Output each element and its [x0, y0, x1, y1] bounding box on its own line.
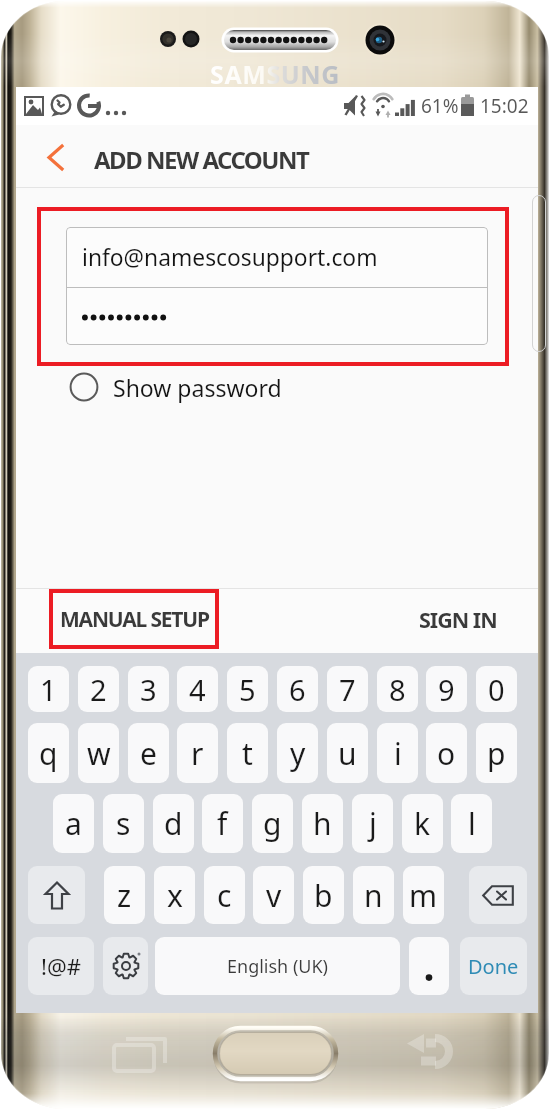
staticText: 61% [421, 93, 459, 119]
staticText: 2 [90, 670, 107, 709]
button[interactable]: d [153, 794, 194, 853]
button[interactable]: z [104, 866, 145, 924]
staticText: j [369, 803, 377, 844]
button[interactable]: i [377, 723, 418, 783]
button[interactable]: a [53, 794, 94, 853]
button[interactable]: Done [460, 937, 527, 995]
button[interactable]: k [402, 794, 443, 853]
staticText: 3 [140, 670, 157, 709]
staticText: 15:02 [480, 93, 529, 119]
staticText: 9 [438, 670, 455, 709]
staticText: s [116, 803, 131, 844]
staticText: t [242, 733, 253, 774]
button[interactable]: s [103, 794, 144, 853]
button[interactable]: l [451, 794, 492, 853]
staticText: 5 [239, 670, 256, 709]
staticText: 0 [488, 670, 505, 709]
button[interactable]: !@# [28, 937, 94, 995]
staticText: q [39, 733, 58, 774]
button[interactable]: Keyboard settings [103, 937, 148, 995]
button[interactable]: x [154, 866, 195, 924]
button[interactable]: y [277, 723, 318, 783]
button[interactable]: f [202, 794, 243, 853]
button[interactable]: b [303, 866, 344, 924]
button[interactable]: 2 [78, 666, 119, 712]
staticText: i [394, 733, 402, 774]
button[interactable]: t [227, 723, 268, 783]
staticText: 4 [189, 670, 206, 709]
staticText: !@# [41, 951, 81, 981]
button[interactable]: 6 [277, 666, 318, 712]
button[interactable]: English (UK) [155, 937, 400, 995]
staticText: f [217, 803, 228, 844]
staticText: h [313, 803, 332, 844]
staticText: e [140, 733, 157, 774]
button[interactable]: Back [34, 136, 78, 180]
button[interactable]: Show password [68, 370, 318, 404]
staticText: English (UK) [227, 954, 329, 979]
staticText: SAMSUNG [210, 57, 340, 85]
button[interactable]: p [476, 723, 517, 783]
button[interactable]: 3 [128, 666, 169, 712]
staticText: ADD NEW ACCOUNT [94, 143, 309, 176]
staticText: Show password [113, 372, 282, 403]
staticText: k [414, 803, 431, 844]
button[interactable]: h [302, 794, 343, 853]
staticText: 7 [339, 670, 356, 709]
staticText: b [314, 875, 333, 916]
staticText: m [409, 875, 438, 916]
button[interactable]: c [204, 866, 245, 924]
staticText: MANUAL SETUP [60, 605, 209, 634]
button[interactable]: MANUAL SETUP [49, 589, 219, 649]
button[interactable]: Backspace [469, 866, 527, 924]
staticText: 1 [40, 670, 57, 709]
staticText: info@namescosupport.com [82, 242, 378, 273]
staticText: Done [468, 953, 519, 980]
button[interactable]: j [352, 794, 393, 853]
button[interactable]: v [253, 866, 294, 924]
button[interactable]: 7 [327, 666, 368, 712]
staticText: x [167, 875, 183, 916]
staticText: SIGN IN [419, 605, 497, 634]
staticText: d [164, 803, 183, 844]
button[interactable]: u [327, 723, 368, 783]
staticText: 8 [389, 670, 406, 709]
button[interactable]: m [403, 866, 444, 924]
button[interactable]: Period [409, 937, 449, 995]
staticText: 6 [289, 670, 306, 709]
button[interactable]: 8 [377, 666, 418, 712]
staticText: o [437, 733, 456, 774]
button[interactable]: SIGN IN [412, 589, 504, 649]
button[interactable]: 1 [28, 666, 69, 712]
staticText: u [338, 733, 357, 774]
staticText: g [263, 803, 282, 844]
staticText: w [87, 733, 111, 774]
button[interactable]: r [177, 723, 218, 783]
staticText: r [191, 733, 204, 774]
staticText: n [364, 875, 383, 916]
staticText: y [290, 733, 306, 774]
staticText: z [117, 875, 132, 916]
button[interactable]: Shift [28, 866, 85, 924]
button[interactable]: 9 [426, 666, 467, 712]
button[interactable]: e [128, 723, 169, 783]
button[interactable]: 4 [177, 666, 218, 712]
button[interactable]: o [426, 723, 467, 783]
button[interactable]: w [78, 723, 119, 783]
staticText: c [217, 875, 232, 916]
staticText: v [266, 875, 282, 916]
staticText: a [65, 803, 82, 844]
button[interactable]: g [252, 794, 293, 853]
button[interactable]: 5 [227, 666, 268, 712]
staticText: p [487, 733, 506, 774]
button[interactable]: q [28, 723, 69, 783]
staticText: l [468, 803, 476, 844]
button[interactable]: 0 [476, 666, 517, 712]
button[interactable]: n [353, 866, 394, 924]
